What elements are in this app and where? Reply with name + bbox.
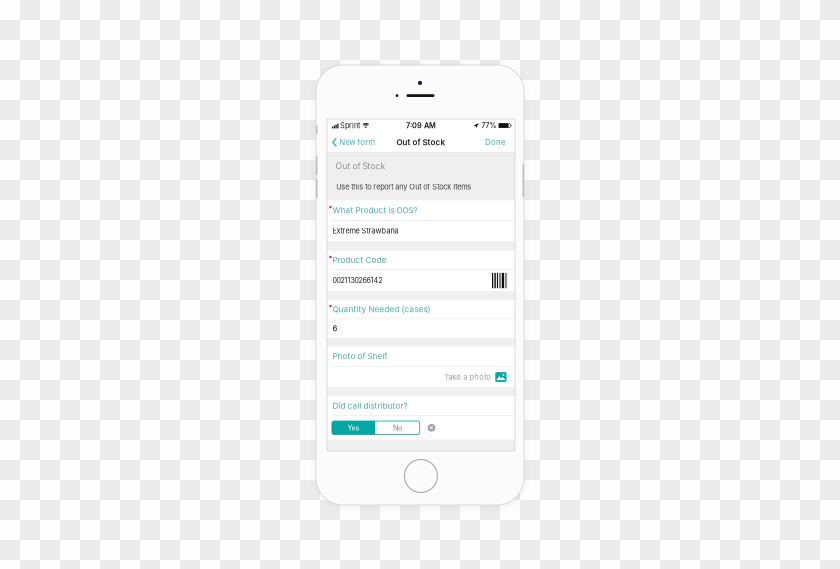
staticText: New form — [339, 137, 375, 147]
staticText: Extreme Strawbana — [332, 226, 398, 235]
staticText: Out of Stock — [396, 137, 445, 147]
staticText: No — [393, 423, 402, 432]
button[interactable]: Take a photo — [327, 367, 515, 387]
staticText: Use this to report any Out of Stock Item… — [336, 182, 471, 191]
staticText: 0021130266142 — [332, 276, 382, 285]
button[interactable]: No — [375, 421, 420, 435]
staticText: Done — [485, 137, 506, 147]
staticText: Sprint — [340, 121, 360, 130]
button[interactable]: Yes — [332, 421, 375, 435]
staticText: Photo of Shelf — [332, 351, 387, 361]
staticText: Out of Stock — [335, 161, 385, 171]
staticText: Did call distributor? — [332, 401, 407, 411]
staticText: What Product is OOS? — [332, 205, 417, 215]
staticText: Quantity Needed (cases) — [332, 304, 430, 314]
staticText: 6 — [332, 324, 337, 333]
staticText: Take a photo — [444, 372, 491, 382]
staticText: Product Code — [332, 255, 386, 265]
button[interactable]: New form — [327, 132, 379, 152]
button[interactable]: Done — [479, 132, 515, 152]
staticText: 7:09 AM — [406, 121, 436, 130]
button[interactable]: Clear selection — [425, 421, 438, 434]
staticText: 77% — [482, 121, 497, 130]
staticText: Yes — [348, 423, 360, 432]
